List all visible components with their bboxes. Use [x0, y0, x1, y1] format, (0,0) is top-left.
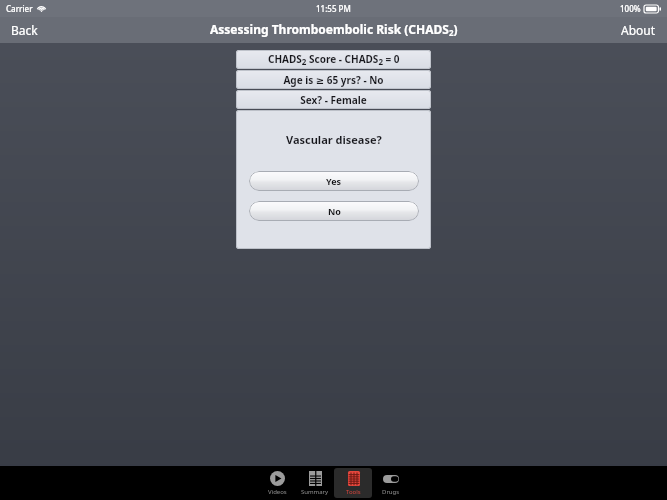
staticText: 100%	[620, 3, 641, 14]
staticText: Tools	[346, 488, 361, 496]
staticText: Carrier	[6, 3, 33, 14]
staticText: Drugs	[382, 488, 400, 496]
staticText: Vascular disease?	[286, 132, 382, 147]
button[interactable]: Summary	[296, 468, 334, 498]
button[interactable]: Tools	[334, 468, 372, 498]
staticText: Videos	[268, 488, 287, 496]
staticText: Sex? - Female	[300, 93, 367, 107]
staticText: About	[621, 22, 656, 38]
staticText: Back	[11, 22, 38, 38]
button[interactable]: Videos	[258, 468, 296, 498]
staticText: CHADS2 Score - CHADS2 = 0	[268, 52, 400, 67]
button[interactable]: Sex? - Female	[236, 90, 431, 109]
staticText: 11:55 PM	[316, 3, 351, 14]
button[interactable]: About	[610, 18, 667, 42]
staticText: Summary	[301, 488, 329, 496]
staticText: No	[328, 205, 341, 217]
button[interactable]: Drugs	[372, 468, 410, 498]
button[interactable]: No	[249, 201, 419, 221]
staticText: Assessing Thromboembolic Risk (CHADS2)	[210, 21, 458, 39]
button[interactable]: Back	[0, 18, 49, 42]
button[interactable]: Yes	[249, 171, 419, 191]
staticText: Age is ≥ 65 yrs? - No	[283, 73, 384, 87]
staticText: Yes	[326, 175, 342, 187]
button[interactable]: CHADS2 Score - CHADS2 = 0	[236, 50, 431, 69]
button[interactable]: Age is ≥ 65 yrs? - No	[236, 70, 431, 89]
